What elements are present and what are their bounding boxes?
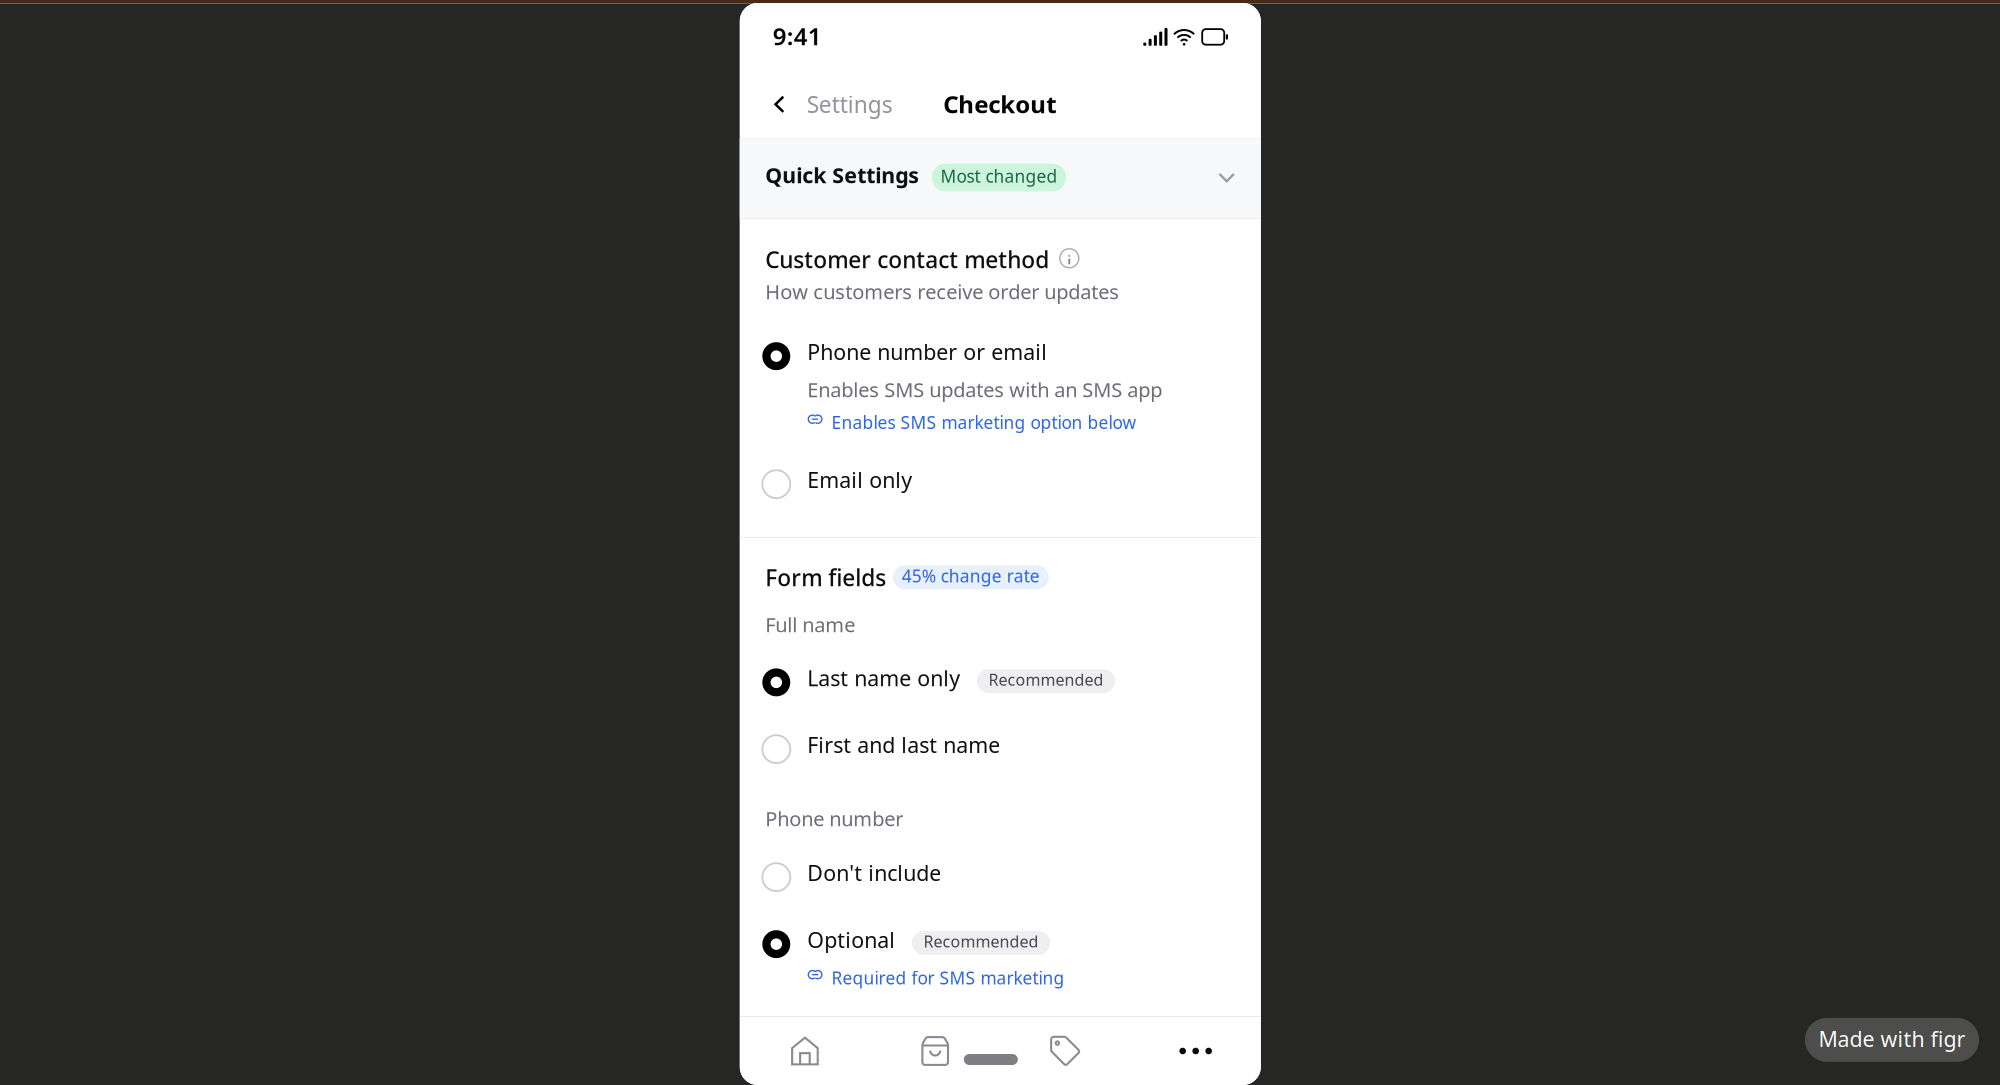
staticText: Phone number [765, 805, 903, 832]
staticText: Email only [807, 465, 912, 494]
staticText: Enables SMS updates with an SMS app [807, 376, 1162, 403]
staticText: Most changed [940, 164, 1057, 187]
staticText: Checkout [943, 88, 1056, 120]
staticText: Enables SMS marketing option below [831, 411, 1136, 434]
button[interactable]: Last name only [740, 668, 1261, 696]
button[interactable]: Products [1000, 1017, 1130, 1085]
staticText: 45% change rate [902, 564, 1040, 587]
button[interactable]: Orders [870, 1017, 1000, 1085]
staticText: Recommended [988, 669, 1103, 690]
staticText: Settings [807, 89, 893, 119]
staticText: Form fields [765, 562, 886, 592]
staticText: Optional [807, 925, 895, 954]
staticText: Quick Settings [765, 161, 919, 189]
button[interactable]: Made with figr [1805, 1018, 1979, 1062]
button[interactable]: Phone number or email [740, 342, 1261, 434]
button[interactable]: Optional [740, 930, 1261, 989]
button[interactable]: Settings [774, 95, 893, 113]
button[interactable]: Home [740, 1017, 870, 1085]
staticText: Recommended [923, 931, 1038, 952]
staticText: Customer contact method [765, 244, 1049, 274]
staticText: How customers receive order updates [765, 278, 1119, 305]
staticText: Required for SMS marketing [831, 966, 1064, 989]
staticText: 9:41 [773, 20, 822, 52]
button[interactable]: Email only [740, 470, 1261, 498]
staticText: Full name [765, 611, 855, 638]
staticText: Phone number or email [807, 337, 1047, 366]
staticText: First and last name [807, 730, 1000, 759]
button[interactable]: Quick Settings [740, 142, 1261, 220]
staticText: Last name only [807, 664, 960, 692]
button[interactable]: More [1130, 1017, 1261, 1085]
staticText: Made with figr [1818, 1025, 1965, 1053]
staticText: Don't include [807, 858, 941, 887]
button[interactable]: Don't include [740, 863, 1261, 891]
button[interactable]: First and last name [740, 735, 1261, 763]
